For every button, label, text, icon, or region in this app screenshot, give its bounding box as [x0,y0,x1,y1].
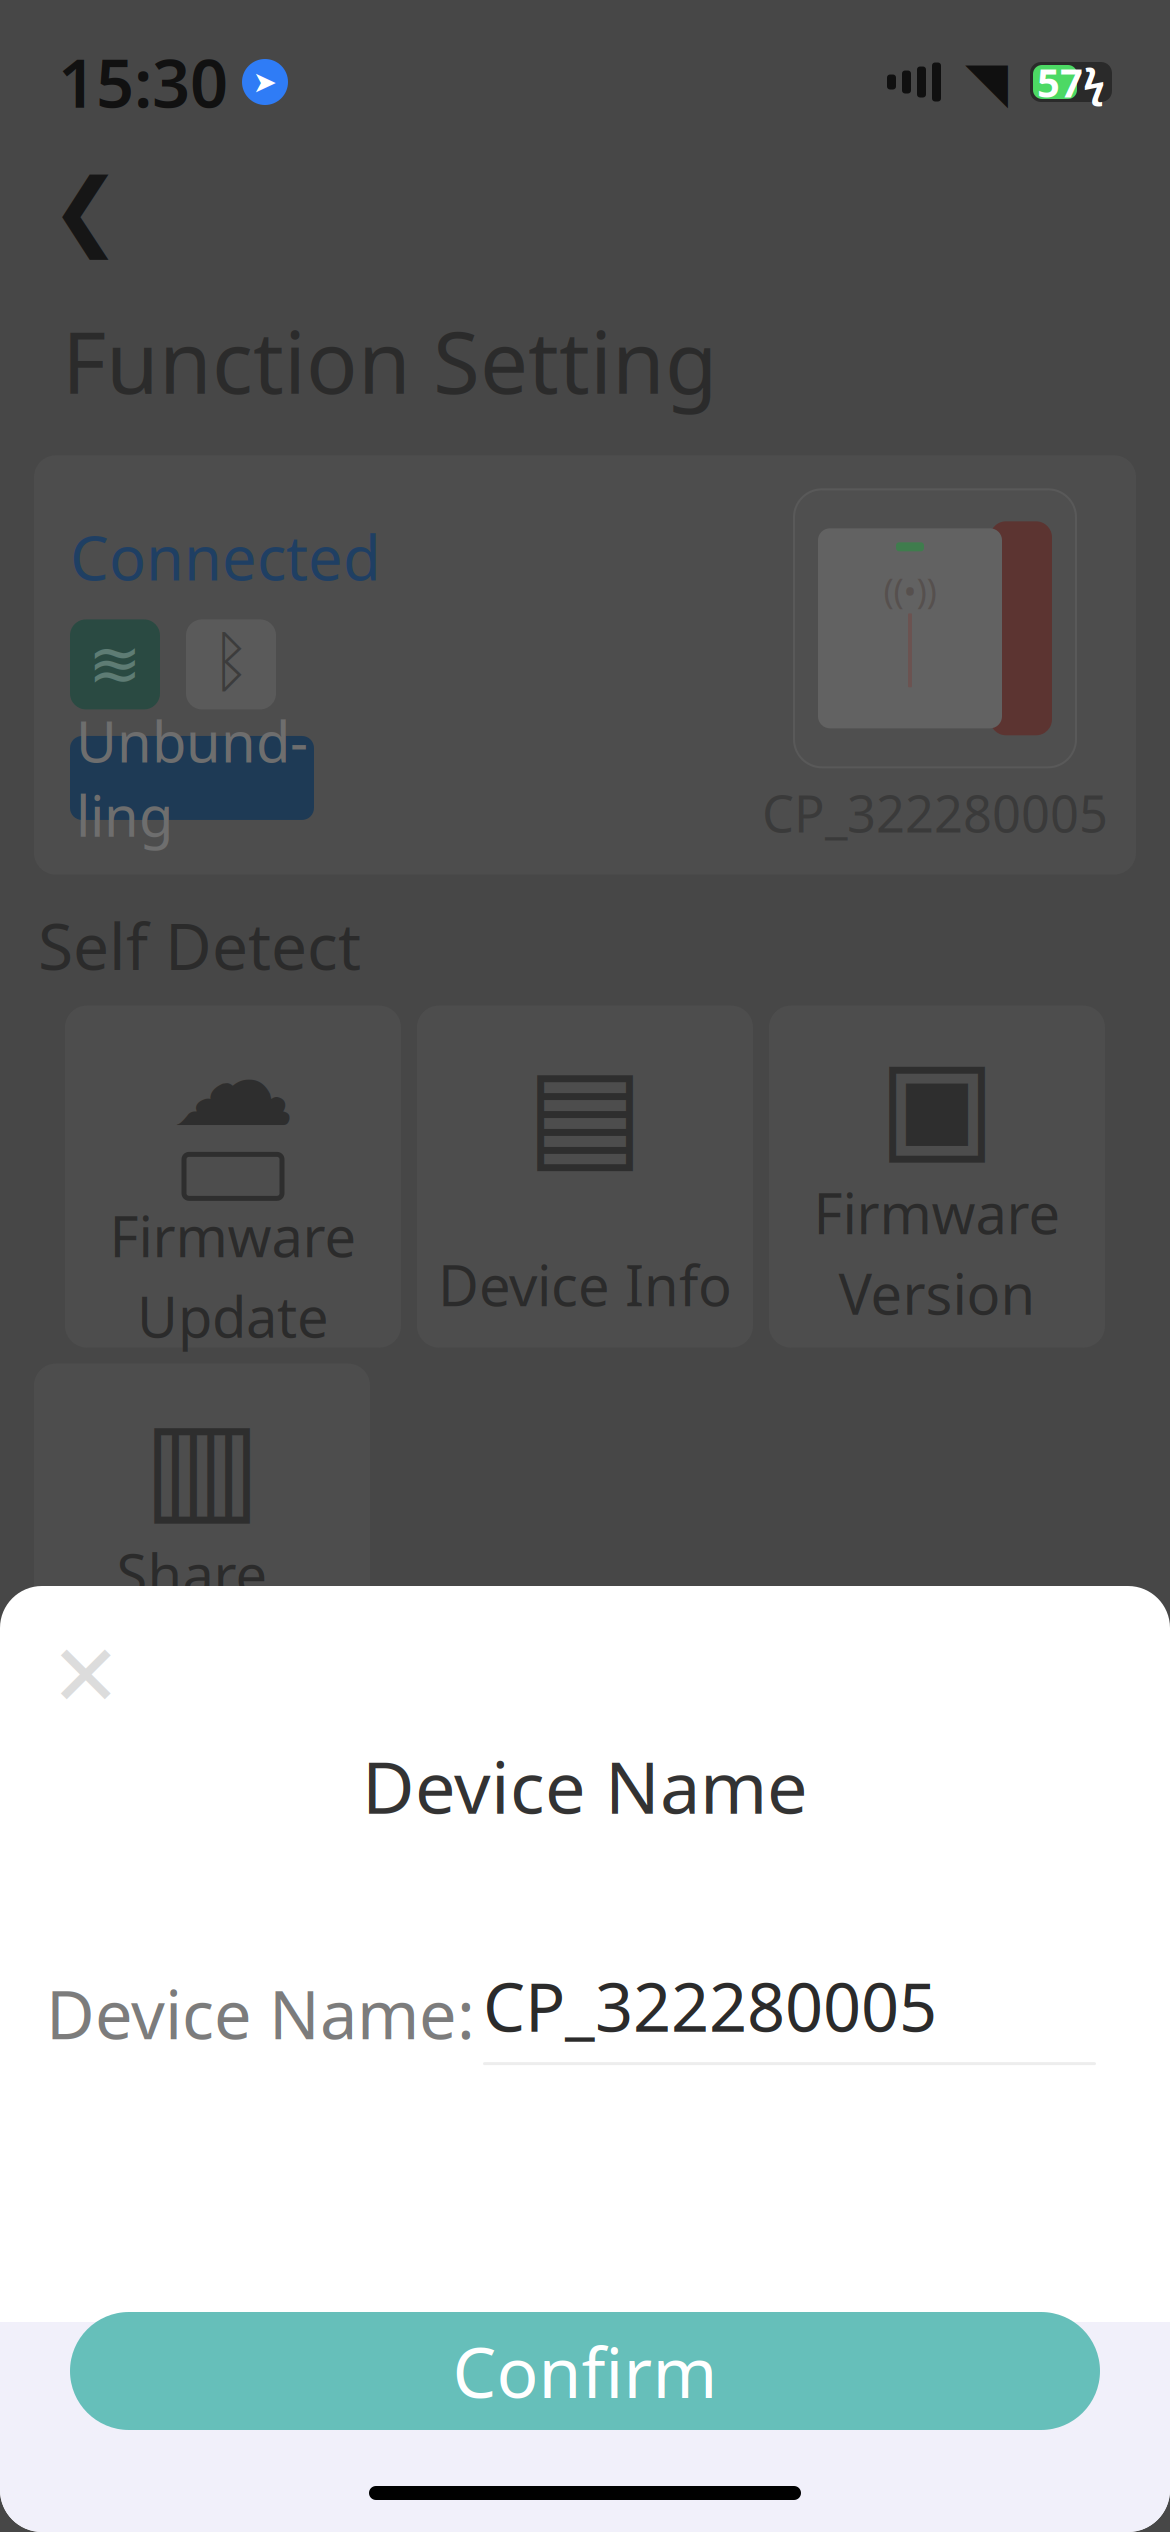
staticText: Device Info [438,1247,732,1322]
button[interactable]: ▣ [769,1006,1105,1348]
staticText: ✕ [50,1628,122,1724]
staticText: Share record [116,1536,287,1685]
staticText: Unbundling [76,704,308,852]
staticText: ❮ [50,162,122,258]
staticText: 15:30 [58,38,228,126]
staticText: ☁ [170,1010,295,1152]
staticText: CP_322280005 [762,779,1108,847]
staticText: ((•)) [883,567,936,613]
button[interactable]: Close [32,1622,140,1730]
staticText: ▥ [143,1394,261,1536]
button[interactable]: Unbundling [70,736,314,820]
staticText: Version [838,1256,1035,1330]
button[interactable]: ▤ [417,1006,753,1348]
staticText: Firmware [813,1175,1060,1250]
staticText: ➤ [252,65,277,99]
staticText: ▤ [526,1042,644,1184]
button[interactable]: Confirm [70,2312,1100,2430]
button[interactable]: ☁ [65,1006,401,1348]
button[interactable]: Back [34,158,138,262]
staticText: CP_322280005 [483,1962,937,2050]
button[interactable]: ▥ [34,1364,370,1706]
staticText: Device Name: [46,1969,475,2058]
staticText: ▣ [878,1033,996,1175]
staticText: 57ϟ [1037,55,1105,108]
staticText: ◥ [965,50,1008,114]
staticText: Firmware [109,1198,356,1273]
staticText: Self Detect [38,903,361,988]
staticText: Function Setting [62,304,717,417]
staticText: Confirm [452,2325,717,2417]
staticText: ᛒ [211,632,251,697]
staticText: ≋ [88,628,142,701]
button[interactable]: Wi-Fi [70,619,160,709]
button[interactable]: Bluetooth [186,619,276,709]
staticText: Connected [70,516,381,597]
staticText: Update [137,1279,329,1353]
staticText: Device Name [362,1738,808,1834]
